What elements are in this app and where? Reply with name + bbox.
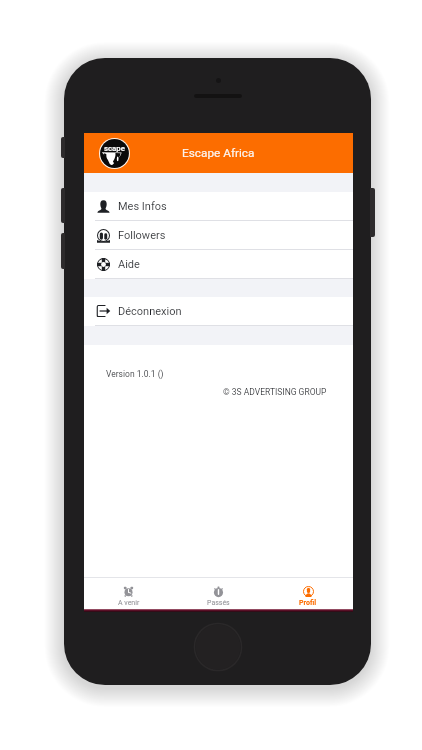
button[interactable]: Passés	[173, 578, 263, 609]
button[interactable]: Déconnexion	[84, 297, 353, 325]
staticText: Version 1.0.1 ()	[106, 369, 164, 379]
button[interactable]: Aide	[84, 250, 353, 278]
button[interactable]: Escape Africa logo	[99, 138, 130, 169]
staticText: Profil	[299, 599, 317, 607]
staticText: Escape Africa	[182, 146, 255, 160]
staticText: Passés	[207, 599, 230, 607]
button[interactable]: A venir	[84, 578, 173, 609]
staticText: Aide	[118, 258, 140, 271]
button[interactable]: Profil	[263, 578, 353, 609]
staticText: A venir	[118, 599, 140, 607]
staticText: Déconnexion	[118, 305, 182, 318]
staticText: Mes Infos	[118, 200, 167, 213]
staticText: © 3S ADVERTISING GROUP	[223, 387, 327, 397]
staticText: Followers	[118, 229, 166, 242]
button[interactable]: Followers	[84, 221, 353, 249]
button[interactable]: Mes Infos	[84, 192, 353, 220]
staticText: scape	[104, 144, 125, 153]
